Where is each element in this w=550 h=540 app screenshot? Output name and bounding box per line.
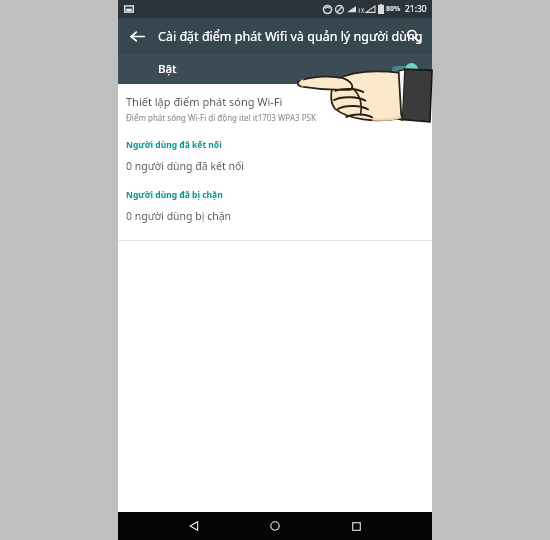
button[interactable]: Back: [122, 21, 152, 51]
button[interactable]: 0 người dùng đã kết nối: [118, 158, 432, 174]
button[interactable]: Thiết lập điểm phát sóng Wi-Fi: [118, 92, 432, 125]
button[interactable]: Back: [181, 513, 207, 539]
staticText: Bật: [158, 61, 177, 77]
button[interactable]: Bật: [118, 54, 432, 84]
button[interactable]: 0 người dùng bị chặn: [118, 208, 432, 224]
staticText: Cài đặt điểm phát Wifi và quản lý người …: [158, 28, 423, 45]
staticText: Thiết lập điểm phát sóng Wi-Fi: [126, 94, 283, 109]
button[interactable]: Recent apps: [343, 513, 369, 539]
staticText: Điểm phát sóng Wi-Fi di động itel it1703…: [126, 112, 316, 123]
button[interactable]: Search: [398, 21, 428, 51]
staticText: Người dùng đã bị chặn: [126, 189, 223, 201]
staticText: 0 người dùng đã kết nối: [126, 159, 244, 173]
staticText: 80%: [386, 4, 401, 14]
staticText: 0 người dùng bị chặn: [126, 209, 232, 223]
staticText: Người dùng đã kết nối: [126, 139, 222, 151]
button[interactable]: Home: [262, 513, 288, 539]
staticText: 21:30: [405, 3, 427, 15]
